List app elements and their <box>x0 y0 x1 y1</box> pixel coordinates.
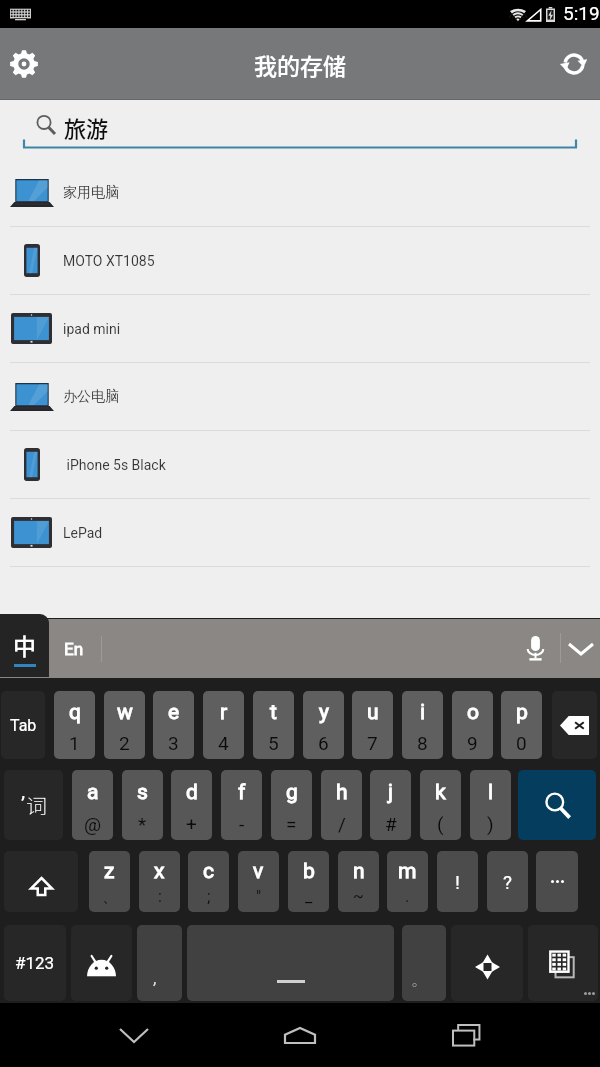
button[interactable]: Search <box>518 770 596 840</box>
button[interactable]: , <box>137 925 182 1001</box>
staticText: ) <box>487 813 494 835</box>
button[interactable]: e <box>153 691 194 759</box>
button[interactable]: p <box>501 691 542 759</box>
button[interactable]: Settings <box>0 28 48 100</box>
button[interactable]: w <box>104 691 145 759</box>
staticText: 7 <box>367 732 378 754</box>
staticText: = <box>286 813 297 835</box>
button[interactable]: LePad <box>0 499 600 566</box>
button[interactable]: g <box>271 770 312 840</box>
button[interactable]: t <box>253 691 294 759</box>
staticText: 5 <box>268 732 279 754</box>
button[interactable]: Space <box>187 925 394 1001</box>
staticText: g <box>286 780 298 805</box>
staticText: y <box>319 700 329 725</box>
staticText: v <box>253 859 264 884</box>
staticText: ? <box>503 871 512 893</box>
button[interactable]: Voice input <box>514 629 556 669</box>
staticText: z <box>104 859 115 884</box>
button[interactable]: Arrow keys <box>451 925 523 1001</box>
button[interactable]: c <box>188 851 229 912</box>
staticText: ’ <box>21 792 26 815</box>
button[interactable]: 家用电脑 <box>0 159 600 226</box>
button[interactable]: y <box>303 691 344 759</box>
staticText: En <box>64 639 84 659</box>
staticText: p <box>516 700 528 725</box>
button[interactable]: ipad mini <box>0 295 600 362</box>
button[interactable]: l <box>470 770 511 840</box>
button[interactable]: Home <box>268 1003 332 1067</box>
button[interactable]: Back <box>102 1003 166 1067</box>
button[interactable]: a <box>72 770 113 840</box>
staticText: 、 <box>102 887 118 907</box>
button[interactable]: r <box>203 691 244 759</box>
button[interactable]: ? <box>487 851 528 912</box>
button[interactable]: i <box>402 691 443 759</box>
staticText: iPhone 5s Black <box>63 457 166 473</box>
button[interactable] <box>536 851 578 912</box>
button[interactable]: ’ <box>4 770 63 840</box>
button[interactable]: #123 <box>4 925 66 1001</box>
staticText: : <box>158 887 162 906</box>
button[interactable]: n <box>338 851 379 912</box>
staticText: 词 <box>26 790 47 820</box>
button[interactable]: 中 <box>0 614 49 677</box>
button[interactable]: d <box>171 770 212 840</box>
staticText: ipad mini <box>63 321 121 337</box>
staticText: w <box>117 700 133 725</box>
staticText: s <box>137 780 148 805</box>
staticText: j <box>388 780 394 805</box>
staticText: c <box>203 859 214 884</box>
button[interactable]: 。 <box>402 925 446 1001</box>
staticText: ! <box>455 871 460 893</box>
staticText: u <box>367 700 379 725</box>
staticText: 5:19 <box>563 2 600 24</box>
button[interactable]: Backspace <box>552 691 597 759</box>
button[interactable]: o <box>452 691 493 759</box>
button[interactable]: k <box>420 770 461 840</box>
staticText: 我的存储 <box>254 48 346 81</box>
staticText: 4 <box>218 732 229 754</box>
staticText: . <box>405 887 410 906</box>
button[interactable]: Refresh <box>548 28 600 100</box>
button[interactable]: v <box>238 851 279 912</box>
staticText: 6 <box>318 732 329 754</box>
button[interactable]: u <box>352 691 393 759</box>
button[interactable]: q <box>54 691 95 759</box>
staticText: #123 <box>15 953 55 973</box>
button[interactable]: Recents <box>434 1003 498 1067</box>
button[interactable]: z <box>89 851 130 912</box>
staticText: k <box>435 780 446 805</box>
staticText: 办公电脑 <box>63 388 119 406</box>
button[interactable]: x <box>139 851 180 912</box>
staticText: 2 <box>119 732 130 754</box>
button[interactable]: iPhone 5s Black <box>0 431 600 498</box>
button[interactable]: s <box>122 770 163 840</box>
button[interactable]: Shift <box>4 851 78 912</box>
button[interactable]: j <box>370 770 411 840</box>
staticText: 1 <box>69 732 80 754</box>
staticText: i <box>420 700 426 725</box>
button[interactable]: Hide keyboard <box>562 629 600 669</box>
staticText: ; <box>207 887 211 906</box>
button[interactable]: Tab <box>1 691 45 759</box>
staticText: 3 <box>168 732 179 754</box>
staticText: ( <box>437 813 444 835</box>
button[interactable]: ! <box>437 851 478 912</box>
button[interactable]: b <box>288 851 329 912</box>
staticText: , <box>153 968 157 988</box>
staticText: n <box>353 859 365 884</box>
staticText: 家用电脑 <box>63 184 119 202</box>
button[interactable]: h <box>321 770 362 840</box>
button[interactable]: MOTO XT1085 <box>0 227 600 294</box>
button[interactable]: Switch input method <box>71 925 132 1001</box>
staticText: 0 <box>516 732 527 754</box>
button[interactable]: More symbols <box>528 925 598 1001</box>
staticText: / <box>338 813 346 835</box>
button[interactable]: m <box>387 851 428 912</box>
staticText: x <box>154 859 165 884</box>
staticText: f <box>238 780 246 805</box>
button[interactable]: f <box>221 770 262 840</box>
button[interactable]: 办公电脑 <box>0 363 600 430</box>
staticText: e <box>168 700 180 725</box>
